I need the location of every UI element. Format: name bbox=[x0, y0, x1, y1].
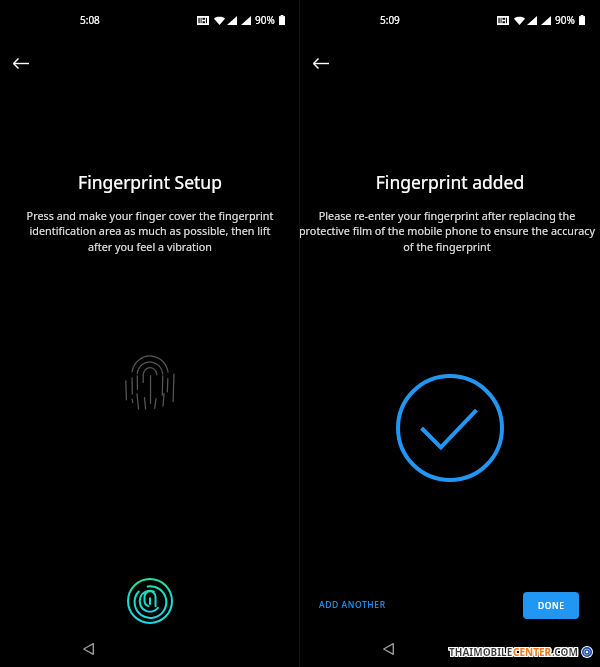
button[interactable]: DONE bbox=[523, 592, 579, 619]
staticText: CENTER bbox=[514, 646, 553, 660]
staticText: THAIMOBILE bbox=[448, 644, 512, 658]
staticText: ADD ANOTHER bbox=[319, 599, 386, 611]
staticText: .COM bbox=[553, 645, 579, 659]
staticText: 5:09 bbox=[380, 13, 400, 27]
staticText: THAIMOBILE bbox=[450, 646, 514, 660]
staticText: DONE bbox=[538, 600, 565, 612]
staticText: CENTER bbox=[512, 646, 551, 660]
staticText: CENTER bbox=[514, 645, 553, 659]
staticText: .COM bbox=[551, 644, 577, 658]
staticText: THAIMOBILE bbox=[449, 646, 513, 660]
staticText: THAIMOBILE bbox=[448, 646, 512, 660]
staticText: CENTER bbox=[513, 646, 552, 660]
staticText: Please re-enter your fingerprint after r… bbox=[297, 208, 597, 255]
button[interactable]: ADD ANOTHER bbox=[312, 592, 393, 618]
staticText: CENTER bbox=[514, 644, 553, 658]
staticText: CENTER bbox=[513, 645, 552, 659]
staticText: THAIMOBILE bbox=[450, 645, 514, 659]
staticText: THAIMOBILE bbox=[449, 645, 513, 659]
staticText: .COM bbox=[551, 645, 577, 659]
staticText: .COM bbox=[553, 644, 579, 658]
staticText: CENTER bbox=[512, 644, 551, 658]
staticText: CENTER bbox=[512, 645, 551, 659]
staticText: .COM bbox=[552, 645, 578, 659]
staticText: .COM bbox=[552, 646, 578, 660]
staticText: 5:08 bbox=[80, 13, 100, 27]
staticText: .COM bbox=[552, 644, 578, 658]
staticText: Press and make your finger cover the fin… bbox=[22, 208, 278, 255]
staticText: .COM bbox=[551, 646, 577, 660]
button[interactable]: Fingerprint sensor bbox=[126, 577, 174, 625]
staticText: Fingerprint Setup bbox=[0, 170, 300, 194]
button[interactable]: Back bbox=[301, 43, 341, 83]
staticText: Fingerprint added bbox=[300, 170, 600, 194]
staticText: THAIMOBILE bbox=[449, 644, 513, 658]
button[interactable]: Back bbox=[68, 629, 108, 667]
staticText: 90% bbox=[555, 13, 575, 27]
staticText: THAIMOBILE bbox=[448, 645, 512, 659]
button[interactable]: Back bbox=[368, 629, 408, 667]
button[interactable]: Back bbox=[1, 43, 41, 83]
staticText: .COM bbox=[553, 646, 579, 660]
staticText: CENTER bbox=[513, 644, 552, 658]
staticText: 90% bbox=[255, 13, 275, 27]
staticText: THAIMOBILE bbox=[450, 644, 514, 658]
